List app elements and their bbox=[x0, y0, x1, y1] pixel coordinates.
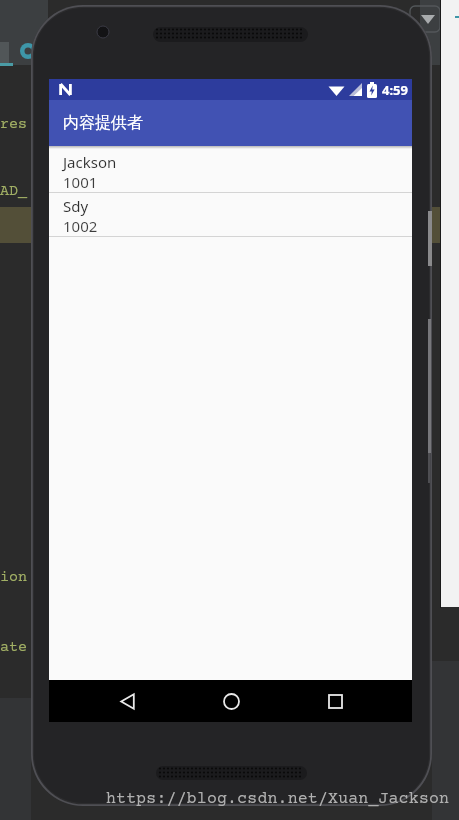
staticText: 1002 bbox=[63, 216, 98, 236]
staticText: 内容提供者 bbox=[63, 113, 143, 133]
staticText: ion bbox=[0, 569, 27, 586]
button[interactable] bbox=[301, 680, 369, 722]
staticText: AD_ bbox=[0, 183, 27, 200]
staticText: https://blog.csdn.net/Xuan_Jackson bbox=[106, 790, 450, 809]
button[interactable]: 内容提供者 bbox=[49, 100, 412, 146]
staticText: ate bbox=[0, 639, 27, 656]
staticText: Sdy bbox=[63, 196, 89, 216]
staticText: 4:59 bbox=[382, 81, 408, 99]
button[interactable] bbox=[197, 680, 265, 722]
button[interactable] bbox=[93, 680, 161, 722]
staticText: 1001 bbox=[63, 172, 98, 192]
staticText: res bbox=[0, 116, 27, 133]
button[interactable]: Sdy bbox=[49, 193, 412, 236]
staticText: Jackson bbox=[63, 152, 117, 172]
button[interactable]: Jackson bbox=[49, 149, 412, 192]
